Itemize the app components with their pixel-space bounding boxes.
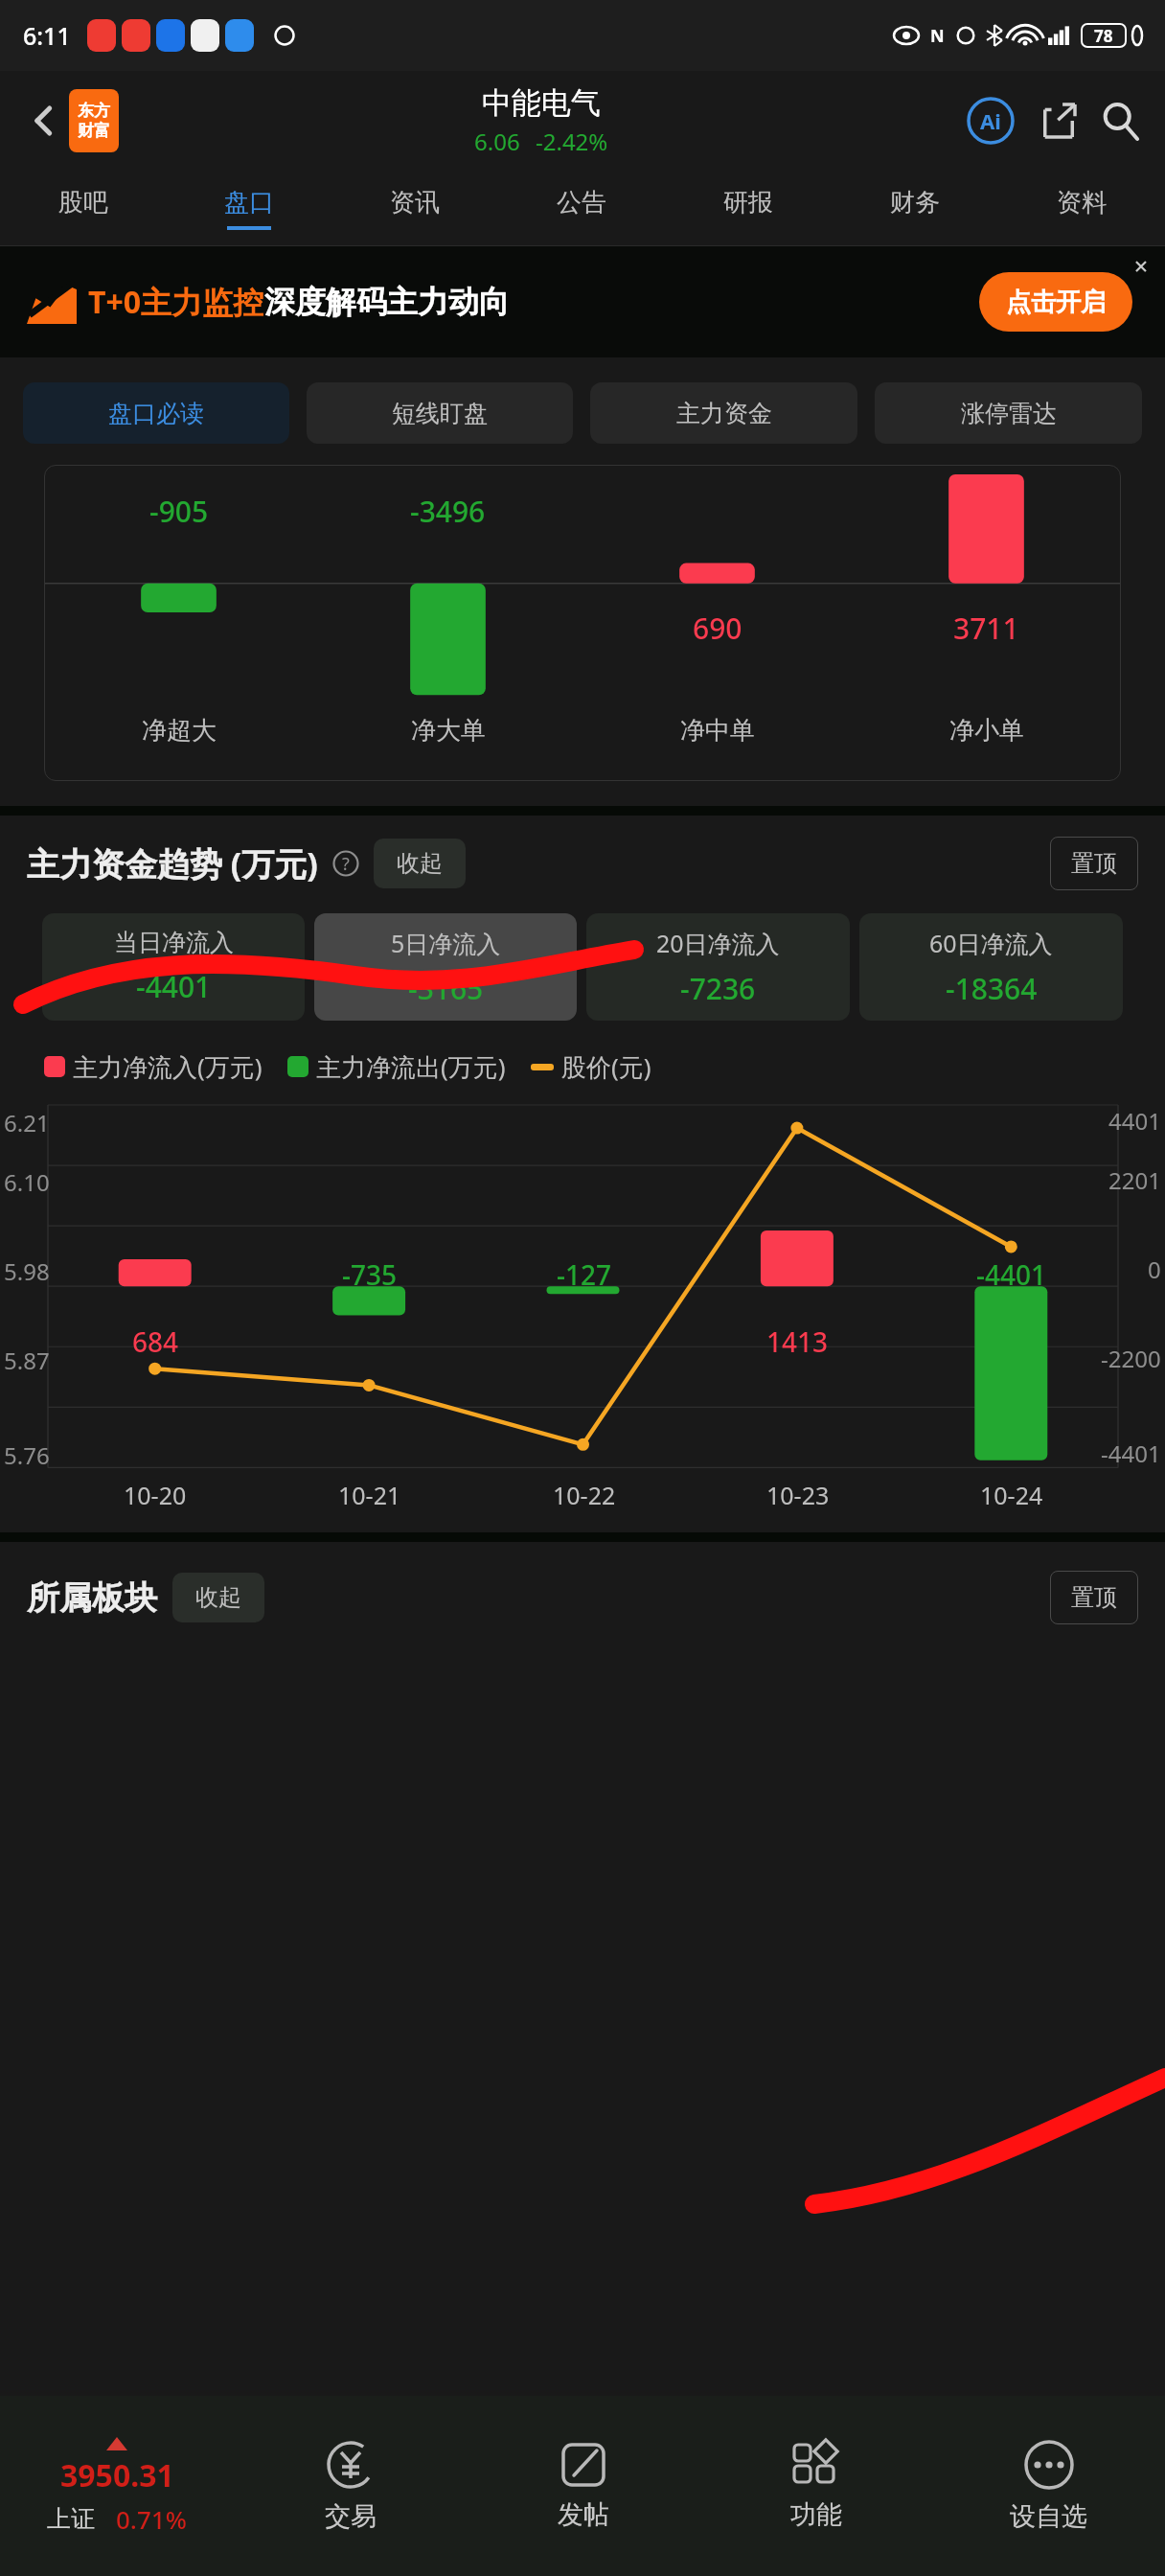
- staticText: 0: [1148, 1253, 1161, 1285]
- staticText: 置顶: [1071, 1583, 1117, 1612]
- staticText: 主力资金趋势 (万元): [27, 841, 318, 885]
- staticText: 684: [132, 1323, 179, 1360]
- staticText: 5.98: [4, 1255, 50, 1287]
- staticText: 3711: [953, 609, 1019, 648]
- staticText: -127: [557, 1256, 612, 1293]
- button[interactable]: 收起: [172, 1573, 264, 1622]
- staticText: 20日净流入: [656, 927, 780, 959]
- staticText: -3496: [410, 492, 486, 531]
- staticText: 10-24: [980, 1479, 1043, 1511]
- button[interactable]: 资讯: [331, 171, 498, 245]
- staticText: 78: [1094, 25, 1113, 47]
- staticText: 主力资金: [676, 399, 772, 428]
- staticText: 股吧: [58, 187, 108, 218]
- staticText: 主力净流出(万元): [316, 1049, 506, 1084]
- button[interactable]: 盘口必读: [23, 382, 289, 444]
- staticText: 当日净流入: [114, 928, 234, 957]
- staticText: 60日净流入: [929, 927, 1053, 959]
- button[interactable]: 发帖: [467, 2396, 699, 2576]
- staticText: 资讯: [390, 187, 440, 218]
- staticText: 2201: [1108, 1164, 1161, 1196]
- staticText: -905: [149, 492, 209, 531]
- staticText: 涨停雷达: [961, 399, 1057, 428]
- staticText: 功能: [790, 2498, 842, 2531]
- button[interactable]: Share: [1035, 97, 1083, 145]
- button[interactable]: 盘口: [166, 171, 331, 245]
- staticText: 5.87: [4, 1345, 50, 1376]
- button[interactable]: 涨停雷达: [875, 382, 1142, 444]
- button[interactable]: 5日净流入: [314, 913, 577, 1021]
- button[interactable]: 资料: [998, 171, 1165, 245]
- staticText: 短线盯盘: [392, 399, 488, 428]
- button[interactable]: Search: [1096, 96, 1146, 146]
- staticText: 交易: [325, 2500, 377, 2533]
- button[interactable]: 功能: [699, 2396, 932, 2576]
- button[interactable]: 短线盯盘: [307, 382, 573, 444]
- staticText: 研报: [723, 187, 773, 218]
- staticText: 股价(元): [561, 1049, 651, 1084]
- staticText: 所属板块: [27, 1577, 157, 1619]
- button[interactable]: 东方: [69, 89, 119, 152]
- staticText: 置顶: [1071, 849, 1117, 878]
- button[interactable]: 置顶: [1050, 1571, 1138, 1624]
- staticText: -18364: [946, 969, 1038, 1008]
- staticText: 东方: [78, 101, 110, 121]
- staticText: 中能电气: [482, 84, 601, 122]
- button[interactable]: 股吧: [0, 171, 166, 245]
- button[interactable]: 点击开启: [979, 272, 1132, 332]
- button[interactable]: AI: [964, 94, 1017, 148]
- staticText: N: [930, 24, 945, 48]
- button[interactable]: 设自选: [932, 2396, 1165, 2576]
- staticText: -3165: [408, 969, 484, 1008]
- button[interactable]: Help: [331, 849, 360, 878]
- staticText: 点击开启: [1006, 287, 1106, 318]
- staticText: 4401: [1108, 1105, 1161, 1137]
- staticText: 财务: [890, 187, 940, 218]
- staticText: 收起: [397, 849, 443, 878]
- staticText: 净中单: [680, 715, 755, 747]
- staticText: -4401: [1101, 1437, 1161, 1469]
- button[interactable]: 置顶: [1050, 837, 1138, 890]
- button[interactable]: 公告: [498, 171, 665, 245]
- staticText: Ai: [980, 106, 1001, 135]
- staticText: -4401: [136, 967, 212, 1006]
- staticText: -2.42%: [536, 126, 608, 157]
- staticText: 6.06: [474, 126, 520, 157]
- staticText: 1413: [766, 1323, 829, 1360]
- staticText: 深度解码主力动向: [264, 283, 510, 321]
- staticText: 净超大: [142, 715, 217, 747]
- button[interactable]: 60日净流入: [859, 913, 1123, 1021]
- staticText: -735: [342, 1256, 398, 1293]
- button[interactable]: 交易: [234, 2396, 467, 2576]
- staticText: 盘口: [224, 187, 274, 218]
- button[interactable]: 财务: [832, 171, 998, 245]
- staticText: -4401: [976, 1256, 1047, 1293]
- staticText: 10-20: [124, 1479, 187, 1511]
- staticText: 6:11: [23, 19, 71, 52]
- staticText: 主力净流入(万元): [73, 1049, 263, 1084]
- button[interactable]: Back: [19, 96, 69, 146]
- staticText: T+0主力监控: [88, 281, 264, 323]
- staticText: 发帖: [558, 2498, 609, 2531]
- button[interactable]: 3950.31: [0, 2396, 234, 2576]
- staticText: -2200: [1101, 1343, 1161, 1374]
- button[interactable]: 收起: [374, 839, 466, 888]
- staticText: 3950.31: [60, 2454, 174, 2496]
- staticText: 5.76: [4, 1439, 50, 1471]
- button[interactable]: 20日净流入: [586, 913, 850, 1021]
- staticText: 6.21: [4, 1107, 50, 1138]
- staticText: 资料: [1057, 187, 1107, 218]
- staticText: -7236: [680, 969, 756, 1008]
- staticText: 0.71%: [116, 2502, 187, 2536]
- button[interactable]: 研报: [665, 171, 832, 245]
- staticText: 5日净流入: [391, 927, 501, 959]
- button[interactable]: Close: [1125, 250, 1157, 283]
- staticText: 盘口必读: [108, 399, 204, 428]
- button[interactable]: 当日净流入: [42, 913, 305, 1021]
- staticText: 净小单: [949, 715, 1024, 747]
- staticText: 6.10: [4, 1166, 50, 1198]
- button[interactable]: 主力资金: [590, 382, 857, 444]
- staticText: 上证: [47, 2504, 95, 2534]
- staticText: 10-23: [766, 1479, 830, 1511]
- staticText: ?: [342, 852, 350, 876]
